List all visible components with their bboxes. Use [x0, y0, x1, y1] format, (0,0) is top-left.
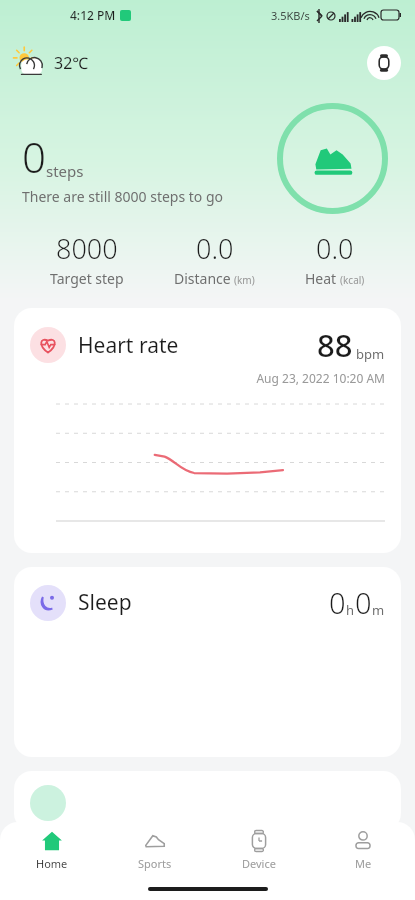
- button[interactable]: Sleep: [14, 567, 401, 757]
- staticText: h: [346, 601, 355, 619]
- staticText: Aug 23, 2022 10:20 AM: [30, 370, 385, 386]
- staticText: 0: [355, 583, 372, 622]
- staticText: Sleep: [78, 588, 132, 617]
- staticText: bpm: [356, 345, 385, 363]
- button[interactable]: Sports: [103, 822, 207, 878]
- staticText: (km): [234, 273, 255, 287]
- staticText: steps: [46, 161, 84, 181]
- staticText: 0: [22, 128, 46, 185]
- button[interactable]: [14, 771, 401, 831]
- staticText: 3.5KB/s: [271, 8, 310, 23]
- staticText: 0.0: [316, 230, 354, 267]
- staticText: Distance: [174, 269, 231, 288]
- button[interactable]: Device: [207, 822, 311, 878]
- staticText: (kcal): [340, 273, 365, 287]
- staticText: Target step: [50, 269, 124, 288]
- staticText: Heart rate: [78, 331, 179, 360]
- staticText: 32℃: [54, 52, 89, 74]
- staticText: Me: [355, 856, 372, 871]
- staticText: m: [372, 601, 385, 619]
- staticText: There are still 8000 steps to go: [22, 187, 224, 206]
- staticText: 88: [317, 324, 353, 366]
- staticText: Home: [36, 856, 68, 871]
- staticText: 0: [329, 583, 346, 622]
- button[interactable]: Heart rate: [14, 308, 401, 553]
- staticText: Device: [242, 856, 276, 871]
- staticText: Heat: [305, 269, 337, 288]
- staticText: 4:12 PM: [70, 7, 116, 23]
- staticText: 8000: [56, 230, 118, 267]
- button[interactable]: Me: [311, 822, 415, 878]
- button[interactable]: Home: [0, 822, 103, 878]
- staticText: 0.0: [196, 230, 234, 267]
- staticText: Sports: [138, 856, 172, 871]
- button[interactable]: My device: [367, 46, 401, 80]
